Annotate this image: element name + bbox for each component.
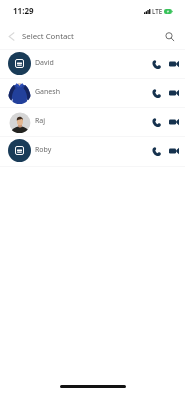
staticText: David [35,58,54,68]
staticText: 11:29 [13,5,34,16]
button[interactable]: Roby [0,136,185,165]
staticText: Select Contact [22,31,74,42]
staticText: Roby [35,145,52,155]
button[interactable]: Back [2,28,20,44]
button[interactable]: Video call Ganesh [166,85,182,101]
staticText: Ganesh [35,87,60,97]
button[interactable]: Call David [148,56,164,72]
staticText: Raj [35,116,46,126]
button[interactable]: Search [161,28,179,46]
button[interactable]: Video call David [166,56,182,72]
button[interactable]: Ganesh [0,78,185,107]
button[interactable]: David [0,49,185,78]
button[interactable]: Call Ganesh [148,85,164,101]
button[interactable]: Video call Raj [166,114,182,130]
button[interactable]: Call Raj [148,114,164,130]
staticText: LTE [152,7,163,15]
button[interactable]: Call Roby [148,143,164,159]
button[interactable]: Video call Roby [166,143,182,159]
button[interactable]: Raj [0,107,185,136]
